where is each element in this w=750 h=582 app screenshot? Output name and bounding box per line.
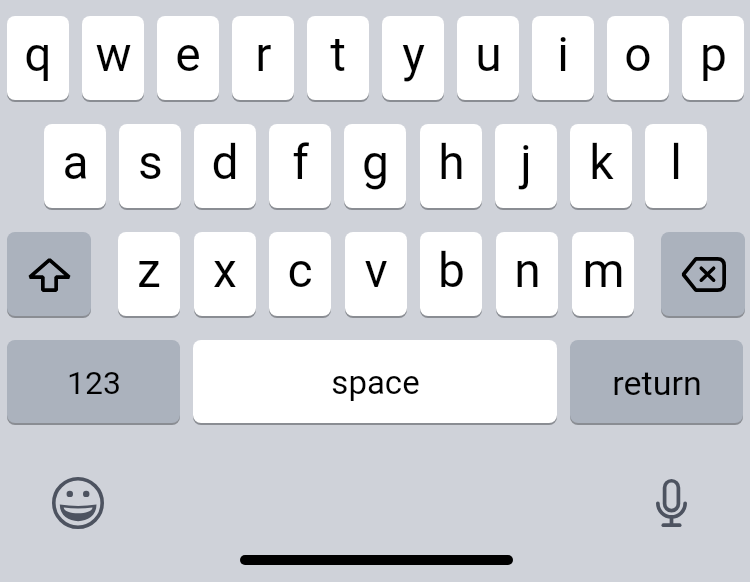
button[interactable]: t	[307, 16, 369, 100]
staticText: x	[213, 242, 237, 298]
staticText: h	[438, 134, 465, 190]
button[interactable]: l	[645, 124, 707, 208]
staticText: p	[700, 26, 727, 82]
button[interactable]: p	[682, 16, 744, 100]
button[interactable]: s	[119, 124, 181, 208]
staticText: g	[362, 134, 389, 190]
button[interactable]: x	[194, 232, 256, 316]
button[interactable]: k	[570, 124, 632, 208]
button[interactable]: y	[382, 16, 444, 100]
button[interactable]: e	[157, 16, 219, 100]
button[interactable]: space	[193, 340, 557, 423]
staticText: return	[612, 363, 702, 403]
staticText: space	[331, 363, 420, 402]
button[interactable]: c	[269, 232, 331, 316]
button[interactable]: return	[570, 340, 743, 423]
button[interactable]: f	[269, 124, 331, 208]
button[interactable]: Backspace	[661, 232, 745, 316]
staticText: d	[211, 134, 239, 190]
staticText: r	[255, 26, 272, 82]
button[interactable]: h	[420, 124, 482, 208]
staticText: a	[62, 134, 89, 190]
staticText: z	[137, 242, 161, 298]
staticText: u	[475, 26, 502, 82]
staticText: i	[557, 26, 569, 82]
staticText: l	[670, 134, 682, 190]
button[interactable]: b	[420, 232, 482, 316]
button[interactable]: w	[82, 16, 144, 100]
button[interactable]: a	[44, 124, 106, 208]
button[interactable]: z	[118, 232, 180, 316]
button[interactable]: v	[345, 232, 407, 316]
button[interactable]: Dictate	[641, 472, 701, 532]
button[interactable]: i	[532, 16, 594, 100]
staticText: n	[514, 242, 541, 298]
button[interactable]: Emoji keyboard	[48, 473, 108, 533]
button[interactable]: 123	[7, 340, 180, 423]
staticText: b	[438, 242, 465, 298]
button[interactable]: o	[607, 16, 669, 100]
staticText: q	[24, 26, 52, 82]
staticText: c	[287, 242, 313, 298]
button[interactable]: u	[457, 16, 519, 100]
button[interactable]: q	[7, 16, 69, 100]
staticText: w	[95, 26, 132, 82]
staticText: t	[330, 26, 346, 82]
staticText: k	[589, 134, 614, 190]
button[interactable]: n	[496, 232, 558, 316]
staticText: o	[624, 26, 652, 82]
button[interactable]: d	[194, 124, 256, 208]
button[interactable]: r	[232, 16, 294, 100]
staticText: m	[582, 242, 625, 298]
button[interactable]: Shift	[7, 232, 91, 316]
staticText: y	[402, 26, 425, 82]
button[interactable]: g	[344, 124, 406, 208]
button[interactable]: j	[495, 124, 557, 208]
staticText: 123	[67, 364, 121, 402]
staticText: s	[138, 134, 163, 190]
staticText: e	[175, 26, 201, 82]
staticText: v	[364, 242, 388, 298]
button[interactable]: m	[572, 232, 634, 316]
staticText: j	[520, 134, 532, 190]
staticText: f	[292, 134, 309, 190]
